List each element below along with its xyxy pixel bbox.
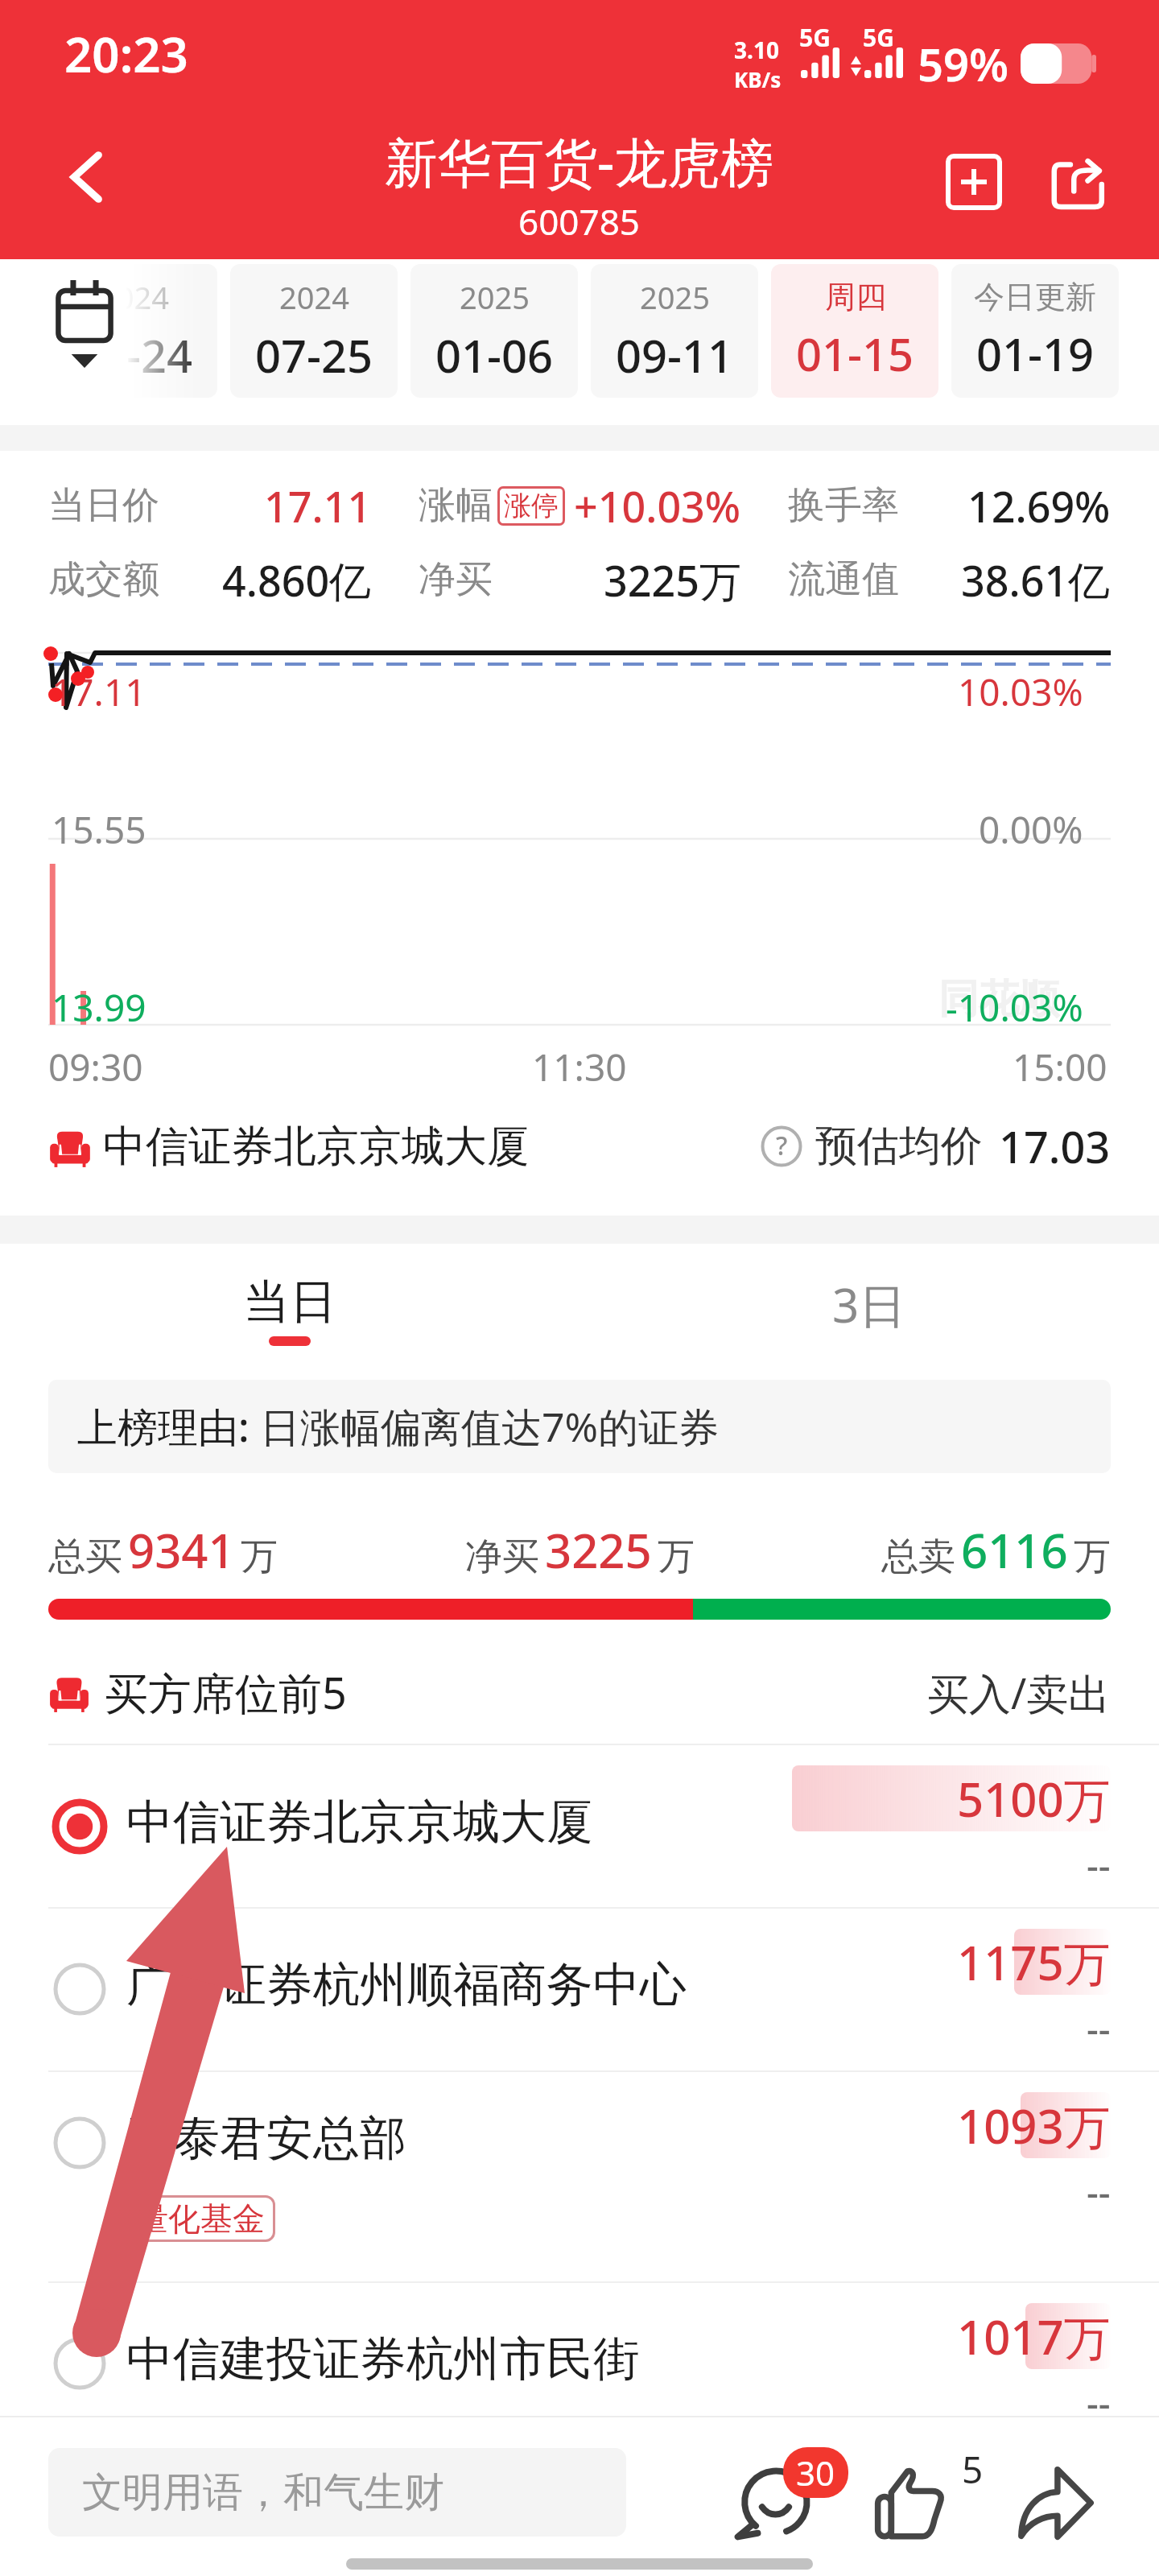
button[interactable]: 中信证券北京京城大厦 [48,1083,1111,1210]
staticText: 11:30 [532,1042,627,1092]
staticText: -- [1087,2377,1111,2428]
staticText: 周四 [825,278,886,316]
staticText: 国泰君安总部 [126,2109,406,2168]
staticText: 1093万 [957,2094,1111,2157]
staticText: 成交额 [48,556,159,603]
staticText: 2024 [99,276,169,318]
staticText: 当日 [243,1273,336,1331]
button[interactable]: Forward [1009,2442,1109,2542]
staticText: 09:30 [48,1042,143,1092]
button[interactable]: 文明用语，和气生财 [48,2448,626,2537]
button[interactable]: 中信建投证券杭州市民街 [0,2283,1159,2436]
staticText: 新华百货-龙虎榜 [385,125,774,197]
staticText: 今日更新 [974,278,1096,316]
button[interactable]: Comments [732,2442,832,2542]
staticText: 17.11 [264,477,372,535]
staticText: 07-24 [75,324,193,386]
staticText: -10.03% [946,982,1083,1033]
staticText: 同花顺 [938,974,1059,1025]
staticText: 总买 [48,1534,122,1580]
staticText: 3日 [832,1273,906,1336]
staticText: 15:00 [1013,1042,1107,1092]
staticText: 4.860亿 [222,551,372,609]
staticText: 总卖 [881,1534,955,1580]
button[interactable]: 当日 [0,1244,579,1361]
staticText: 买入/卖出 [927,1664,1111,1721]
button[interactable]: 2024 [50,264,217,398]
staticText: 5100万 [957,1767,1111,1831]
button[interactable]: 国泰君安总部 [0,2072,1159,2281]
staticText: 13.99 [52,982,146,1033]
staticText: 广发证券杭州顺福商务中心 [126,1955,687,2014]
staticText: ? [776,1128,788,1163]
staticText: -- [1087,2003,1111,2054]
button[interactable]: Like [871,2442,971,2542]
staticText: 600785 [518,197,641,246]
staticText: 净买 [419,556,493,603]
staticText: 日涨幅偏离值达7%的证券 [260,1399,720,1454]
staticText: 6116 [961,1518,1068,1582]
staticText: 万 [658,1534,695,1580]
staticText: 流通值 [788,556,899,603]
button[interactable]: 今日更新 [951,264,1119,398]
staticText: 万 [241,1534,278,1580]
staticText: 3.10 [734,35,779,65]
staticText: 10.03% [958,667,1083,717]
staticText: 20:23 [64,21,188,87]
staticText: 01-19 [976,323,1095,384]
staticText: 2025 [460,276,530,318]
button[interactable]: 3日 [579,1244,1159,1361]
staticText: 涨停 [504,489,559,523]
staticText: 中信建投证券杭州市民街 [126,2330,640,2388]
staticText: 3225 [545,1518,652,1582]
staticText: 1017万 [957,2305,1111,2368]
staticText: 涨幅 [419,482,493,529]
button[interactable]: 上榜理由: [48,1380,1111,1473]
staticText: 01-15 [796,323,914,384]
button[interactable]: Help [761,1125,802,1167]
button[interactable]: 2025 [591,264,758,398]
staticText: 5G [863,21,894,54]
staticText: 当日价 [48,482,159,529]
staticText: 量化基金 [136,2198,265,2239]
staticText: 买方席位前5 [105,1662,347,1722]
button[interactable]: Pick date [35,272,134,370]
staticText: 01-06 [435,324,554,386]
staticText: 17.03 [999,1117,1111,1176]
staticText: KB/s [734,65,782,93]
staticText: 万 [1074,1534,1111,1580]
button[interactable]: 2024 [230,264,398,398]
staticText: 5 [962,2444,984,2495]
staticText: 38.61亿 [961,551,1111,609]
staticText: +10.03% [574,477,741,535]
staticText: 文明用语，和气生财 [82,2467,444,2518]
staticText: 07-25 [255,324,373,386]
staticText: 换手率 [788,482,899,529]
staticText: 09-11 [616,324,734,386]
staticText: 17.11 [52,667,146,717]
staticText: 中信证券北京京城大厦 [103,1120,530,1174]
button[interactable]: Add to watchlist [930,138,1017,225]
staticText: 2024 [279,276,349,318]
staticText: 上榜理由: [77,1399,260,1454]
button[interactable]: 中信证券北京京城大厦 [0,1745,1159,1907]
staticText: 1175万 [957,1930,1111,1994]
button[interactable]: Back [43,134,130,221]
staticText: 15.55 [52,804,146,855]
staticText: 中信证券北京京城大厦 [126,1793,593,1851]
staticText: 2025 [640,276,710,318]
staticText: 9341 [128,1518,235,1582]
staticText: 3225万 [604,551,741,609]
staticText: -- [1087,1839,1111,1890]
button[interactable]: 广发证券杭州顺福商务中心 [0,1909,1159,2070]
staticText: 0.00% [979,804,1083,855]
staticText: 预估均价 [815,1120,983,1173]
staticText: 59% [918,33,1009,94]
button[interactable]: 周四 [771,264,938,398]
button[interactable]: 2025 [410,264,578,398]
button[interactable]: Share [1035,138,1122,225]
staticText: 30 [796,2450,835,2495]
staticText: 12.69% [967,477,1111,535]
button[interactable]: 买方席位前5 [48,1649,1111,1736]
staticText: 净买 [465,1534,539,1580]
